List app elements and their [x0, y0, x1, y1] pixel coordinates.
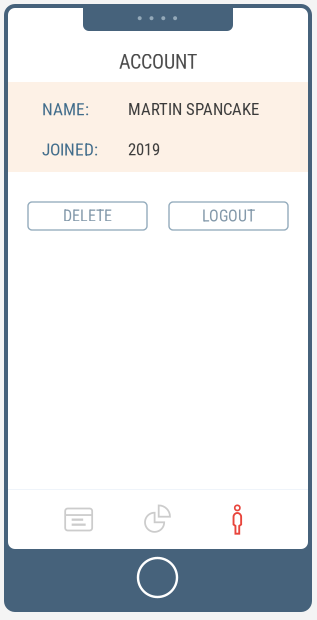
staticText: DELETE [63, 207, 112, 225]
staticText: ACCOUNT [119, 50, 197, 74]
staticText: 2019 [128, 140, 160, 159]
button[interactable]: News [39, 490, 118, 549]
button[interactable]: LOGOUT [169, 202, 288, 230]
staticText: JOINED: [42, 139, 98, 160]
staticText: NAME: [42, 99, 89, 119]
button[interactable]: Stats [118, 490, 198, 549]
staticText: MARTIN SPANCAKE [128, 100, 259, 119]
staticText: LOGOUT [202, 207, 255, 225]
button[interactable]: Account [198, 490, 277, 549]
button[interactable]: DELETE [28, 202, 147, 230]
